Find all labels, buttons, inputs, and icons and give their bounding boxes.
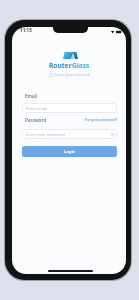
staticText: 11:15 bbox=[20, 27, 32, 33]
staticText: Glass bbox=[72, 61, 90, 70]
staticText: Clean your network bbox=[54, 72, 90, 77]
staticText: Password bbox=[25, 117, 47, 123]
staticText: Forgot password? bbox=[85, 117, 118, 122]
staticText: Router bbox=[49, 61, 72, 70]
staticText: Login bbox=[64, 149, 76, 155]
other: Show password bbox=[110, 132, 115, 137]
button[interactable]: Forgot password? bbox=[85, 117, 118, 122]
staticText: Email bbox=[25, 93, 38, 99]
staticText: Enter your password bbox=[26, 132, 65, 137]
button[interactable]: Login bbox=[22, 146, 117, 157]
button[interactable]: Enter email bbox=[22, 103, 117, 113]
button[interactable]: Enter your password bbox=[22, 129, 117, 139]
staticText: Enter email bbox=[26, 106, 48, 111]
